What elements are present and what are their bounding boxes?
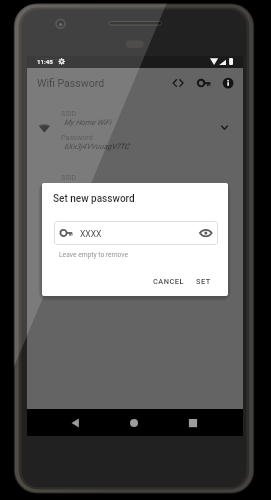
button[interactable]: Home bbox=[122, 409, 146, 436]
button[interactable]: SSID bbox=[27, 93, 243, 183]
button[interactable]: Back bbox=[63, 409, 87, 436]
button[interactable]: CANCEL bbox=[149, 273, 188, 290]
button[interactable]: Set password bbox=[194, 68, 214, 93]
button[interactable]: XXXX bbox=[54, 221, 218, 245]
staticText: XXXX bbox=[80, 229, 102, 239]
staticText: 11:45 bbox=[37, 58, 53, 65]
staticText: SET bbox=[196, 277, 211, 286]
staticText: Set new password bbox=[53, 193, 135, 205]
button[interactable]: Recent apps bbox=[181, 409, 205, 436]
button[interactable]: Wifi Password bbox=[27, 68, 243, 93]
button[interactable]: About bbox=[218, 68, 238, 93]
staticText: SSID bbox=[61, 173, 77, 181]
staticText: Wifi Password bbox=[37, 77, 105, 89]
staticText: CANCEL bbox=[153, 277, 184, 286]
staticText: SSID bbox=[61, 109, 77, 117]
staticText: 6Xx3j4VVuuagV7TC bbox=[64, 142, 130, 151]
staticText: Password bbox=[61, 133, 93, 141]
staticText: My Home WiFi bbox=[64, 118, 112, 127]
button[interactable]: SET bbox=[192, 273, 215, 290]
staticText: Leave empty to remove bbox=[59, 251, 129, 259]
button[interactable]: Show QR code bbox=[168, 68, 188, 93]
